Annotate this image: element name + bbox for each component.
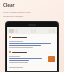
staticText: readable previews: [3, 14, 24, 17]
button[interactable]: [7, 65, 57, 71]
button[interactable]: [7, 39, 57, 50]
other: App screenshot preview: [5, 21, 59, 72]
staticText: Clear categorization and: [3, 10, 31, 13]
button[interactable]: [9, 29, 14, 33]
button[interactable]: [7, 54, 57, 65]
button[interactable]: Clear: [3, 2, 15, 8]
